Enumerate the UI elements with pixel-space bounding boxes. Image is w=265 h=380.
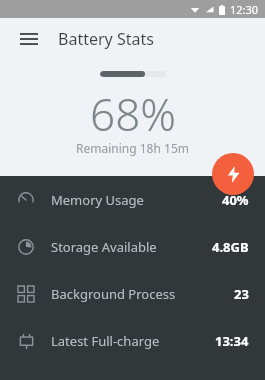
staticText: Background Process	[51, 285, 176, 303]
staticText: Remaining 18h 15m	[76, 140, 189, 156]
button[interactable]: Open navigation menu	[14, 24, 44, 54]
button[interactable]: Background Process	[0, 270, 265, 317]
staticText: Battery Stats	[58, 28, 154, 50]
staticText: 68%	[90, 84, 176, 144]
staticText: 13:34	[215, 332, 249, 350]
staticText: 23	[234, 285, 249, 303]
button[interactable]: Optimize battery	[212, 153, 254, 195]
staticText: 4.8GB	[212, 238, 249, 256]
staticText: Latest Full-charge	[51, 332, 160, 350]
staticText: 40%	[222, 191, 249, 209]
button[interactable]: Storage Available	[0, 223, 265, 270]
staticText: Storage Available	[51, 238, 157, 256]
staticText: 12:30	[230, 2, 259, 17]
button[interactable]: Latest Full-charge	[0, 317, 265, 364]
button[interactable]: Memory Usage	[0, 176, 265, 223]
staticText: Memory Usage	[51, 191, 144, 209]
